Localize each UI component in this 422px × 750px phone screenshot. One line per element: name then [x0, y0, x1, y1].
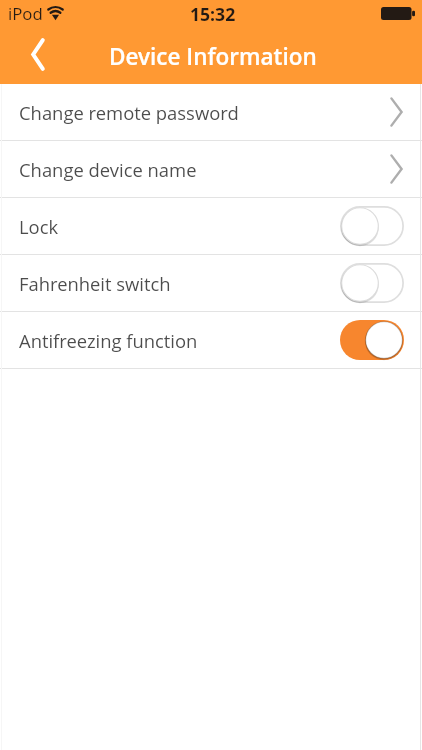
- staticText: 15:32: [190, 2, 236, 26]
- button[interactable]: Toggle off: [340, 263, 404, 303]
- button[interactable]: Toggle on: [340, 320, 404, 360]
- button[interactable]: Toggle off: [340, 206, 404, 246]
- button[interactable]: Back: [0, 28, 56, 84]
- staticText: Lock: [19, 214, 59, 239]
- staticText: iPod: [8, 2, 43, 25]
- button[interactable]: Lock: [0, 198, 422, 254]
- staticText: Device Information: [109, 41, 317, 72]
- staticText: Antifreezing function: [19, 328, 198, 353]
- staticText: Change device name: [19, 157, 197, 182]
- button[interactable]: Fahrenheit switch: [0, 255, 422, 311]
- staticText: Change remote password: [19, 100, 239, 125]
- button[interactable]: Antifreezing function: [0, 312, 422, 368]
- button[interactable]: Change remote password: [0, 84, 422, 140]
- staticText: Fahrenheit switch: [19, 271, 171, 296]
- button[interactable]: Change device name: [0, 141, 422, 197]
